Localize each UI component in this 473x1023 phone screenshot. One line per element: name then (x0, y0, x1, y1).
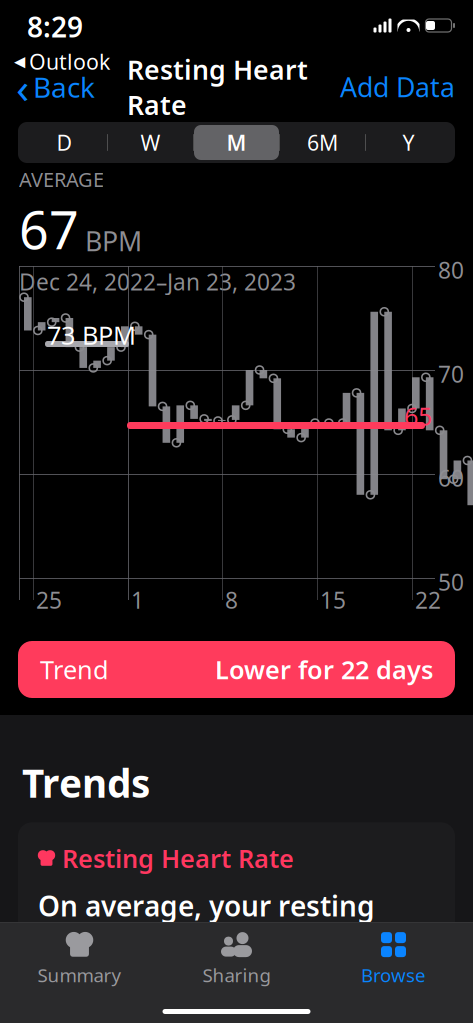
staticText: AVERAGE (19, 166, 104, 193)
staticText: ◀ (14, 53, 25, 70)
staticText: 8:29 (27, 8, 83, 45)
staticText: 73 BPM (47, 318, 136, 352)
staticText: 60 (438, 463, 464, 493)
staticText: On average, your resting heart rate (38, 887, 375, 961)
staticText: Back (33, 68, 95, 106)
staticText: ‹ (16, 59, 29, 115)
button[interactable]: Trend (18, 641, 455, 698)
button[interactable]: ◀ (14, 47, 110, 75)
staticText: Dec 24, 2022–Jan 23, 2023 (19, 267, 296, 297)
staticText: 65 (404, 399, 432, 433)
button[interactable]: Y (366, 125, 451, 160)
staticText: Sharing (202, 963, 270, 987)
staticText: 80 (438, 255, 464, 285)
button[interactable]: D (22, 125, 107, 160)
staticText: 8 (225, 585, 238, 615)
button[interactable]: 6M (280, 125, 365, 160)
staticText: D (56, 128, 72, 157)
button[interactable]: Sharing (158, 932, 315, 986)
button[interactable]: Add Data (330, 63, 465, 111)
staticText: Resting Heart Rate (127, 52, 308, 122)
staticText: BPM (85, 223, 142, 259)
button[interactable]: Browse (315, 932, 472, 986)
staticText: 50 (438, 567, 464, 597)
staticText: 25 (36, 585, 62, 615)
button[interactable]: W (108, 125, 193, 160)
staticText: Y (402, 128, 414, 157)
staticText: W (140, 128, 160, 157)
staticText: Outlook (29, 47, 110, 75)
staticText: M (226, 128, 246, 157)
button[interactable]: M (194, 125, 279, 160)
staticText: Summary (37, 963, 121, 987)
staticText: Add Data (340, 69, 455, 105)
staticText: Lower for 22 days (215, 653, 433, 686)
staticText: decreased over the last 22 days. (38, 962, 392, 1023)
button[interactable]: ‹ (6, 53, 105, 121)
staticText: Browse (361, 963, 426, 987)
staticText: 22 (415, 585, 441, 615)
staticText: 70 (438, 359, 464, 389)
button[interactable]: Summary (1, 932, 158, 986)
staticText: 15 (320, 585, 346, 615)
staticText: Resting Heart Rate (62, 841, 294, 875)
staticText: 6M (307, 128, 338, 157)
staticText: 67 (19, 195, 79, 264)
button[interactable]: Resting Heart Rate (18, 822, 455, 962)
staticText: Trends (22, 757, 150, 808)
staticText: 1 (131, 585, 144, 615)
staticText: Trend (40, 653, 109, 686)
